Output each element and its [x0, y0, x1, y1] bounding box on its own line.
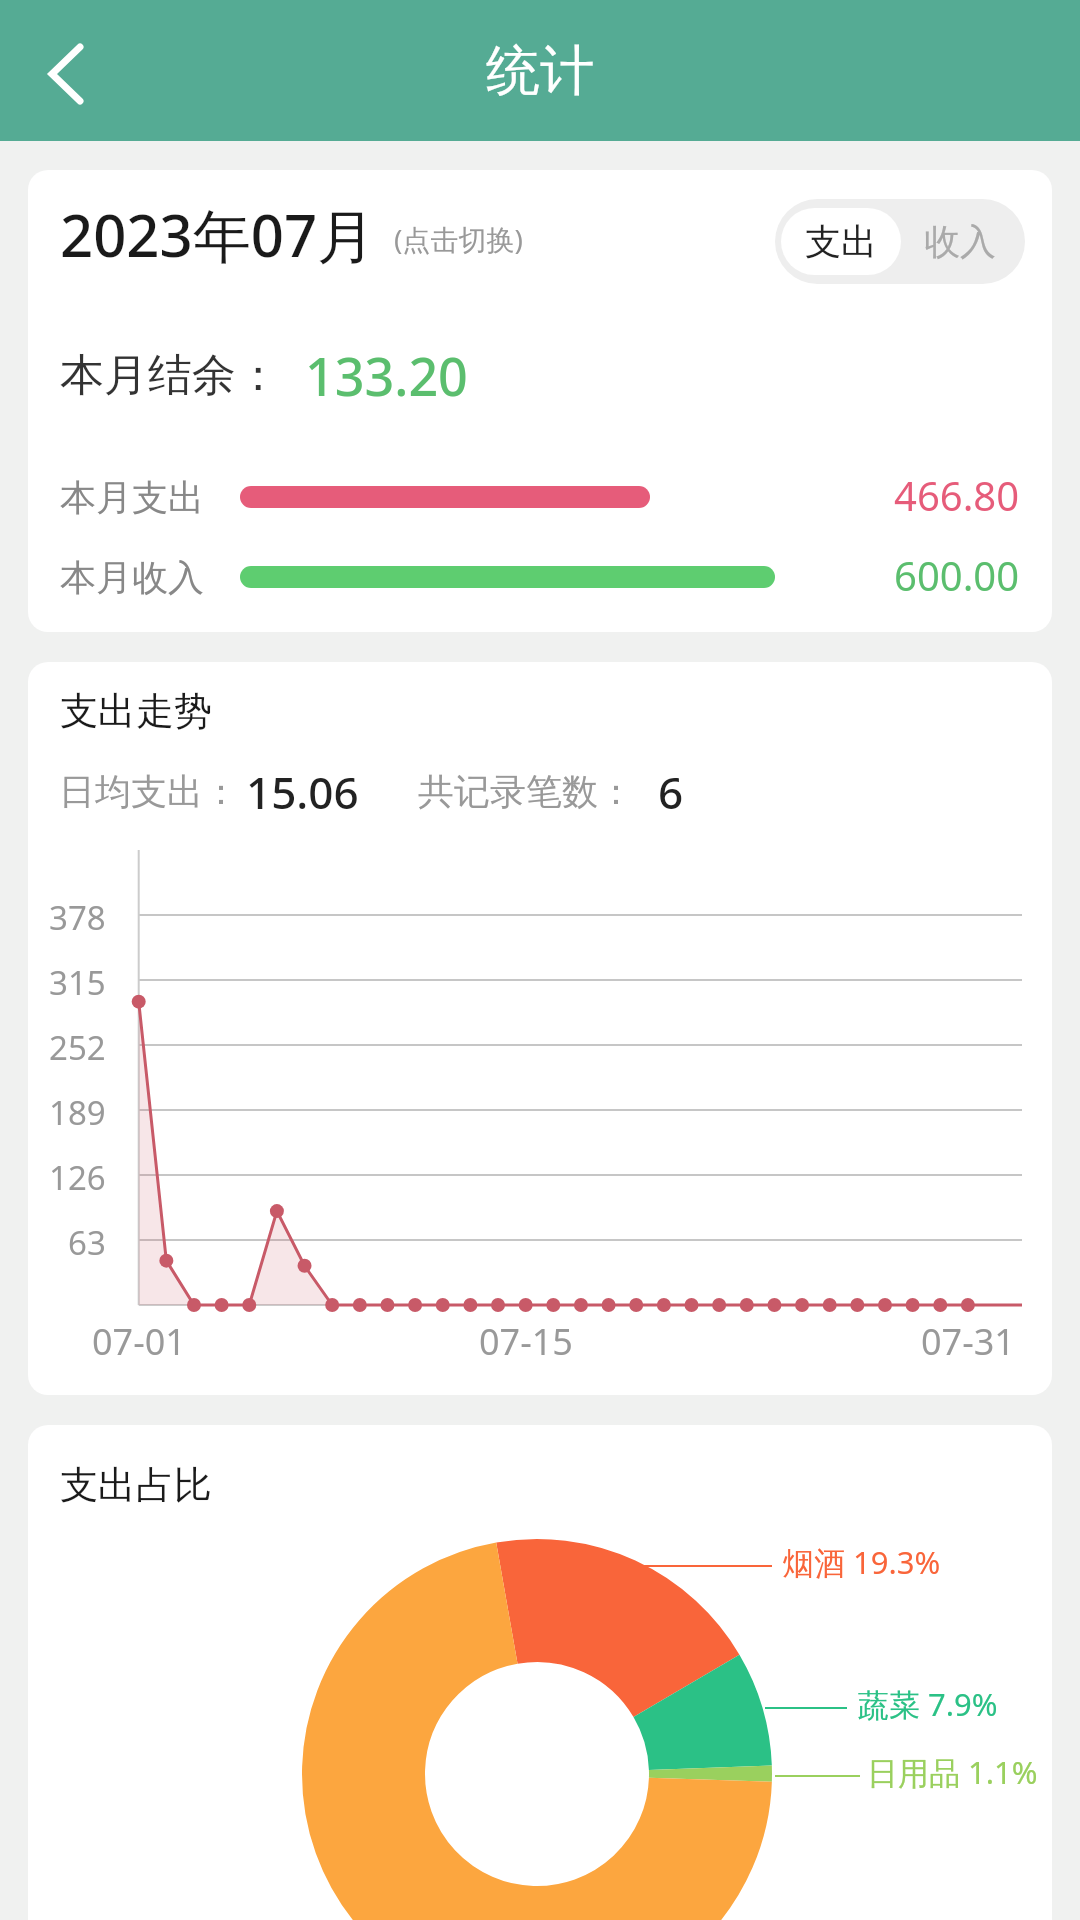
staticText: 蔬菜 7.9%	[858, 1683, 998, 1725]
staticText: 07-31	[921, 1317, 1015, 1361]
staticText: 本月收入	[60, 555, 204, 600]
staticText: 烟酒 19.3%	[783, 1541, 941, 1583]
staticText: 466.80	[894, 468, 1020, 518]
staticText: 15.06	[246, 762, 359, 822]
staticText: 统计	[486, 37, 594, 105]
staticText: 63	[68, 1220, 106, 1264]
staticText: 支出走势	[60, 687, 212, 735]
staticText: 126	[49, 1155, 106, 1199]
button[interactable]: 2023年07月	[60, 195, 376, 274]
staticText: 189	[49, 1090, 106, 1134]
staticText: 支出	[805, 219, 877, 264]
staticText: 本月结余：	[60, 348, 280, 403]
staticText: 252	[49, 1025, 106, 1069]
staticText: 07-01	[92, 1317, 186, 1361]
staticText: 支出占比	[60, 1461, 212, 1509]
staticText: 133.20	[305, 340, 468, 411]
staticText: 日用品 1.1%	[867, 1751, 1038, 1793]
staticText: 378	[49, 895, 106, 939]
staticText: 本月支出	[60, 475, 204, 520]
staticText: 07-15	[479, 1317, 573, 1361]
staticText: (点击切换)	[394, 220, 523, 258]
staticText: 600.00	[894, 548, 1020, 598]
staticText: 共记录笔数：	[418, 769, 634, 814]
staticText: 日均支出：	[59, 769, 239, 814]
staticText: 6	[658, 762, 684, 822]
staticText: 315	[49, 960, 106, 1004]
button[interactable]	[15, 24, 115, 124]
button[interactable]: 支出	[781, 208, 901, 275]
staticText: 收入	[924, 219, 996, 264]
button[interactable]: 收入	[901, 208, 1019, 275]
